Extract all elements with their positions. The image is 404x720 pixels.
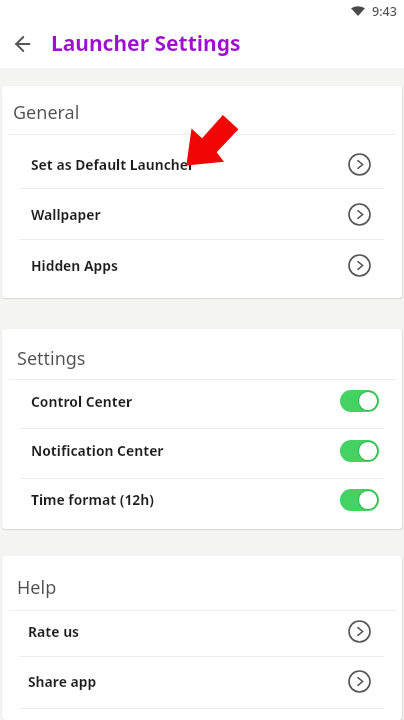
button[interactable]: Notification Center bbox=[2, 429, 402, 478]
button[interactable]: Share app bbox=[2, 657, 402, 708]
staticText: Notification Center bbox=[31, 441, 164, 460]
button[interactable]: Toggle Control Center bbox=[340, 390, 379, 412]
staticText: Set as Default Launcher bbox=[31, 155, 195, 174]
button[interactable]: Wallpaper bbox=[2, 189, 402, 239]
staticText: Wallpaper bbox=[31, 205, 101, 224]
staticText: Share app bbox=[28, 672, 97, 691]
button[interactable]: Rate us bbox=[2, 611, 402, 656]
button[interactable]: Toggle Notification Center bbox=[340, 440, 379, 462]
staticText: Help bbox=[17, 575, 57, 600]
button[interactable]: Control Center bbox=[2, 380, 402, 428]
button[interactable]: Back bbox=[0, 22, 44, 66]
button[interactable]: Set as Default Launcher bbox=[2, 135, 402, 188]
staticText: Time format (12h) bbox=[31, 490, 154, 509]
button[interactable]: Hidden Apps bbox=[2, 240, 402, 291]
staticText: Control Center bbox=[31, 392, 133, 411]
staticText: Rate us bbox=[28, 622, 80, 641]
staticText: 9:43 bbox=[372, 3, 397, 20]
button[interactable]: Time format (12h) bbox=[2, 479, 402, 526]
staticText: Hidden Apps bbox=[31, 256, 118, 275]
staticText: General bbox=[13, 100, 80, 125]
staticText: Settings bbox=[17, 346, 86, 371]
staticText: Launcher Settings bbox=[51, 29, 241, 58]
button[interactable]: Toggle Time format (12h) bbox=[340, 489, 379, 511]
